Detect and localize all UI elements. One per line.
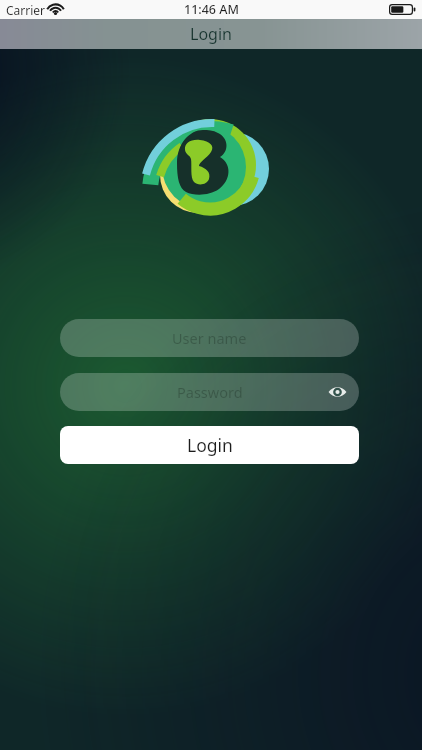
button[interactable]: Login: [60, 426, 359, 464]
staticText: User name: [172, 328, 247, 348]
staticText: Password: [177, 382, 243, 402]
button[interactable]: Show password: [326, 381, 348, 403]
staticText: 11:46 AM: [184, 1, 239, 18]
button[interactable]: User name: [60, 319, 359, 357]
button[interactable]: Login: [0, 19, 422, 49]
staticText: Carrier: [6, 2, 46, 18]
button[interactable]: Password: [60, 373, 359, 411]
staticText: Login: [187, 433, 233, 457]
staticText: Login: [190, 23, 232, 45]
